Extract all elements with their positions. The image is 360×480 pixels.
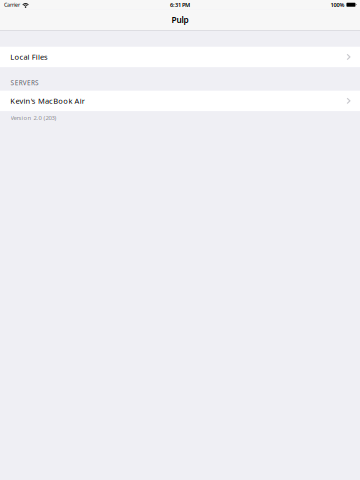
staticText: SERVERS [11, 78, 39, 87]
staticText: 6:31 PM [170, 1, 190, 8]
button[interactable]: Kevin's MacBook Air [0, 91, 360, 111]
staticText: Local Files [10, 52, 48, 62]
staticText: 100% [331, 1, 345, 8]
staticText: Version 2.0 (203) [11, 114, 57, 122]
staticText: Carrier [4, 1, 20, 8]
button[interactable]: Local Files [0, 47, 360, 67]
staticText: Kevin's MacBook Air [10, 96, 85, 106]
staticText: Pulp [171, 14, 188, 25]
